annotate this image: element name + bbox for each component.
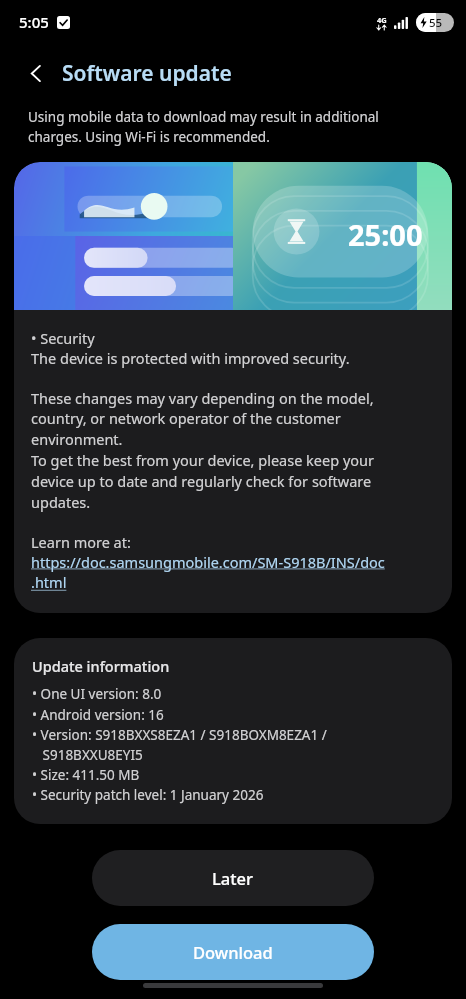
staticText: 4G [377, 15, 387, 25]
staticText: • One UI version: 8.0 • Android version:… [32, 685, 327, 804]
staticText: Using mobile data to download may result… [28, 108, 379, 146]
staticText: 25:00 [348, 215, 423, 254]
button[interactable]: Later [92, 850, 374, 906]
button[interactable]: https://doc.samsungmobile.com/SM-S918B/I… [31, 552, 385, 593]
staticText: These changes may vary depending on the … [31, 388, 375, 513]
staticText: • Security The device is protected with … [31, 328, 350, 369]
button[interactable]: Download [92, 924, 374, 980]
staticText: Software update [62, 59, 232, 88]
staticText: 55 [429, 15, 443, 31]
staticText: Download [193, 941, 273, 963]
staticText: Later [212, 867, 254, 889]
button[interactable]: Back [14, 51, 58, 95]
staticText: 5:05 [19, 12, 49, 32]
staticText: Update information [32, 656, 170, 676]
staticText: Learn more at: [31, 532, 131, 552]
